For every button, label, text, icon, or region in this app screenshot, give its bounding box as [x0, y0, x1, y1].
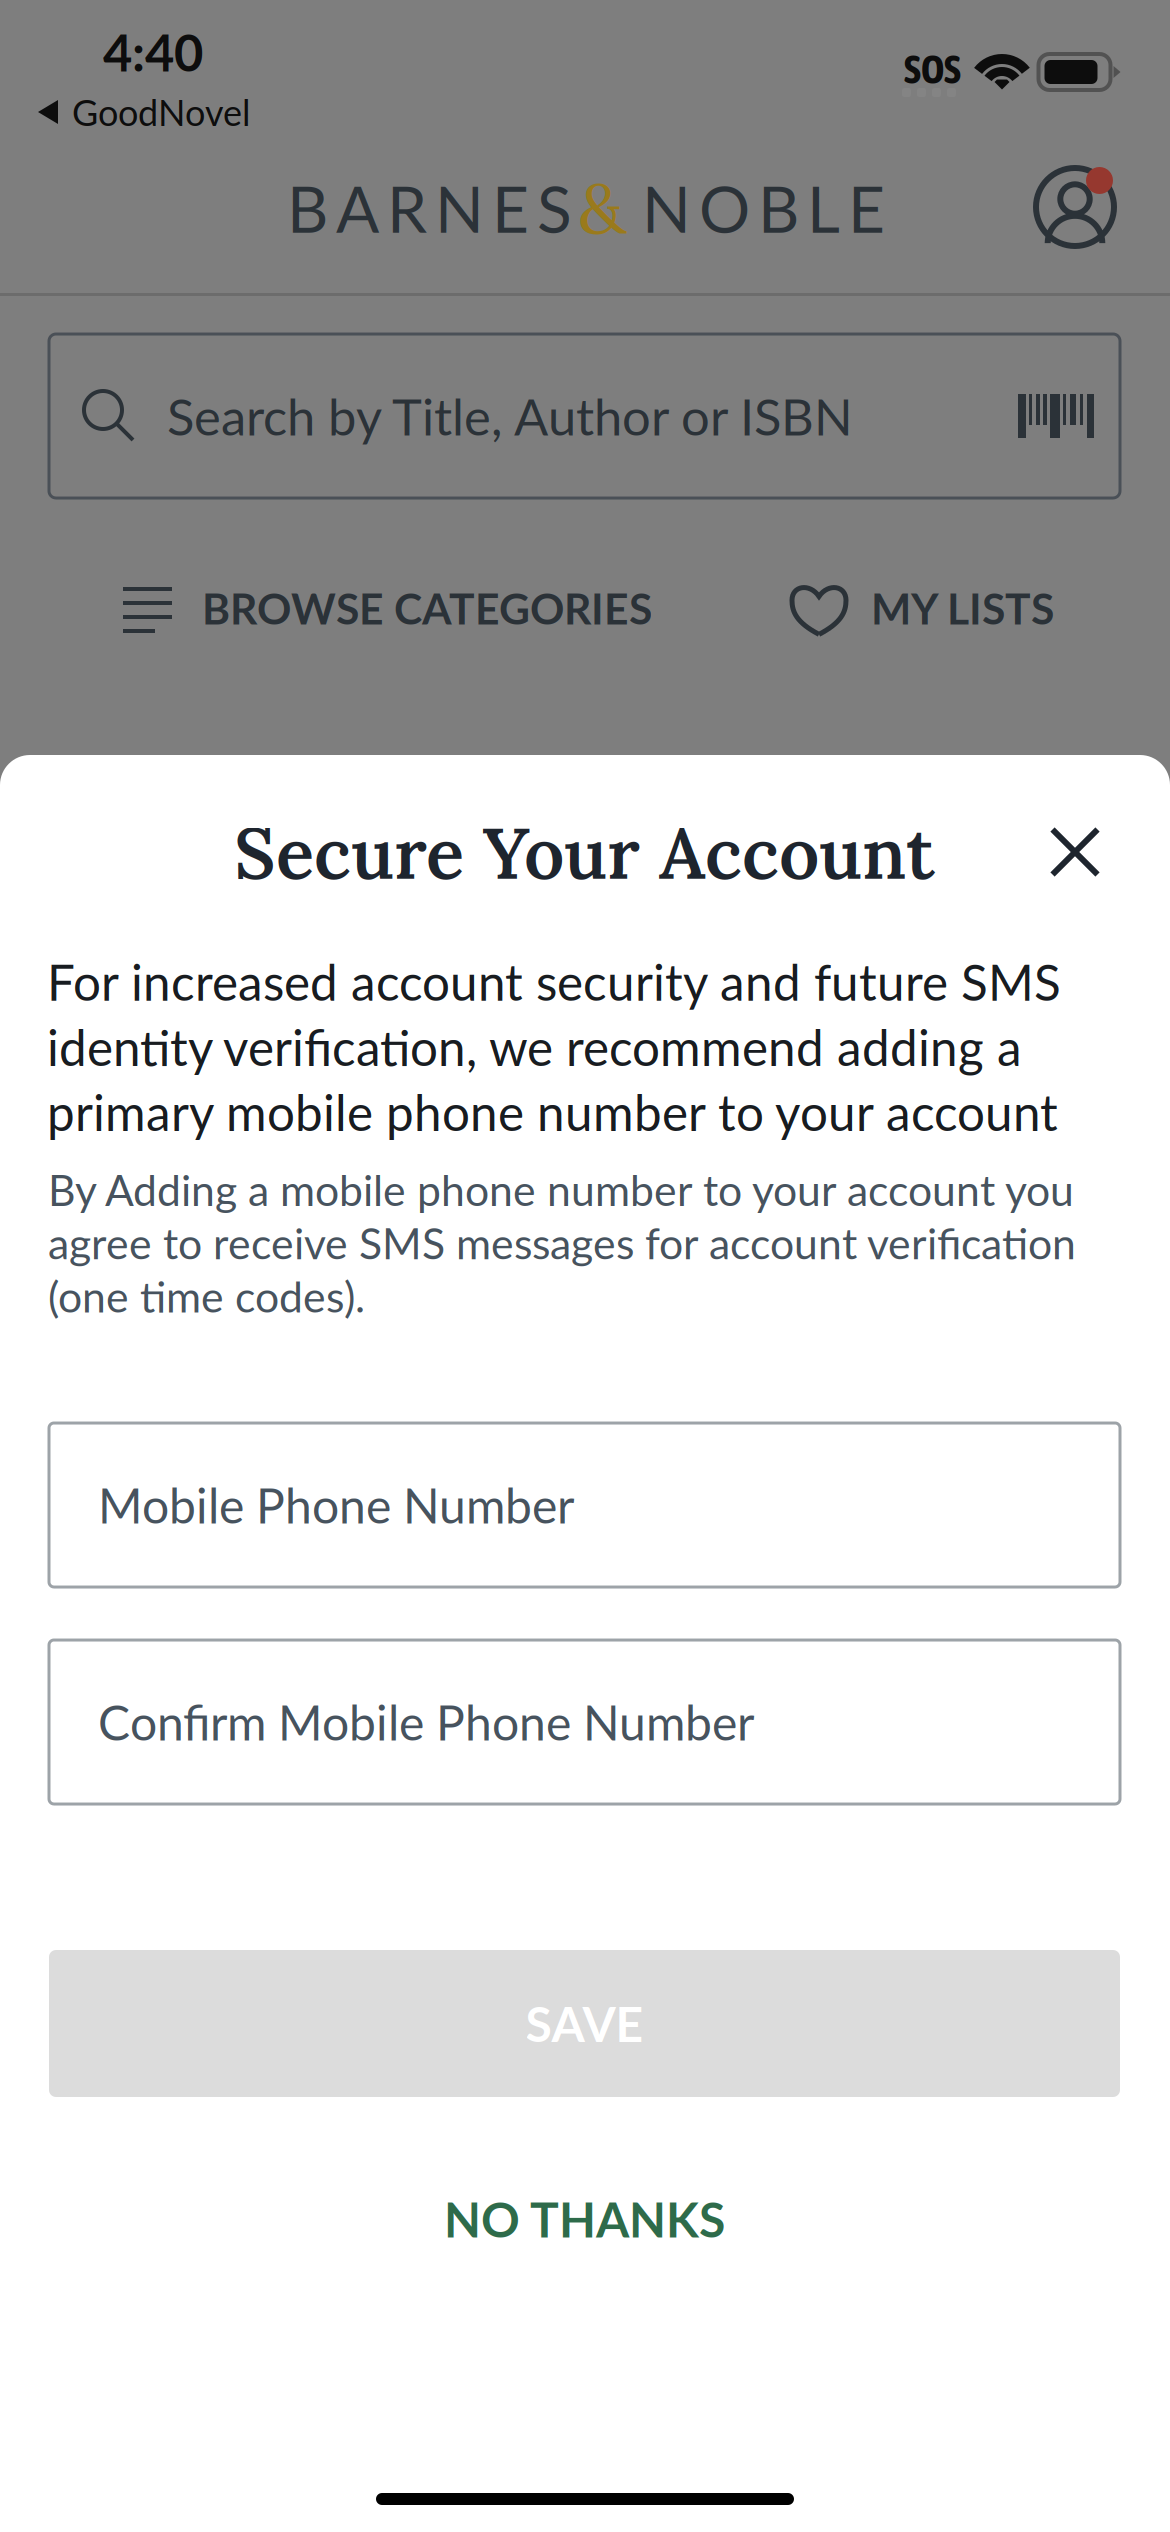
- staticText: B A R N E S: [287, 170, 572, 246]
- button[interactable]: NO THANKS: [49, 2164, 1120, 2274]
- staticText: Mobile Phone Number: [98, 1476, 574, 1534]
- staticText: SOS: [904, 46, 961, 92]
- button[interactable]: BROWSE CATEGORIES: [123, 568, 903, 648]
- button[interactable]: Search by Title, Author or ISBN: [49, 334, 1120, 498]
- staticText: &: [578, 164, 626, 252]
- button[interactable]: Confirm Mobile Phone Number: [49, 1640, 1120, 1804]
- staticText: BROWSE CATEGORIES: [202, 582, 652, 634]
- staticText: NO THANKS: [444, 2190, 725, 2248]
- staticText: SAVE: [525, 1995, 643, 2052]
- button[interactable]: MY LISTS: [791, 568, 1170, 648]
- button[interactable]: Mobile Phone Number: [49, 1423, 1120, 1587]
- staticText: MY LISTS: [871, 582, 1054, 634]
- staticText: 4:40: [103, 22, 203, 82]
- staticText: Secure Your Account: [234, 808, 935, 898]
- staticText: N O B L E: [642, 170, 885, 246]
- staticText: Confirm Mobile Phone Number: [98, 1693, 754, 1751]
- staticText: Search by Title, Author or ISBN: [167, 386, 853, 446]
- button[interactable]: Close: [1027, 804, 1123, 900]
- button[interactable]: Account: [1015, 152, 1135, 262]
- button[interactable]: SAVE: [49, 1950, 1120, 2097]
- staticText: By Adding a mobile phone number to your …: [48, 1164, 1076, 1322]
- staticText: For increased account security and futur…: [47, 952, 1061, 1142]
- staticText: GoodNovel: [72, 90, 250, 134]
